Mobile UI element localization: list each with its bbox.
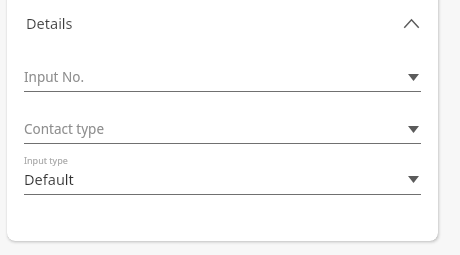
other: Open Contact type dropdown	[405, 121, 421, 137]
staticText: Contact type	[24, 120, 105, 138]
staticText: Details	[26, 13, 73, 33]
button[interactable]: Input No.	[7, 68, 438, 92]
staticText: Input type	[24, 154, 68, 166]
button[interactable]: Input type	[7, 154, 438, 195]
button[interactable]: Contact type	[7, 120, 438, 144]
button[interactable]: Details	[7, 0, 438, 46]
other: Open Default dropdown	[405, 171, 421, 187]
button[interactable]: Collapse Details	[398, 10, 424, 36]
other: Open Input No. dropdown	[405, 69, 421, 85]
staticText: Input No.	[24, 68, 84, 86]
staticText: Default	[24, 169, 74, 189]
